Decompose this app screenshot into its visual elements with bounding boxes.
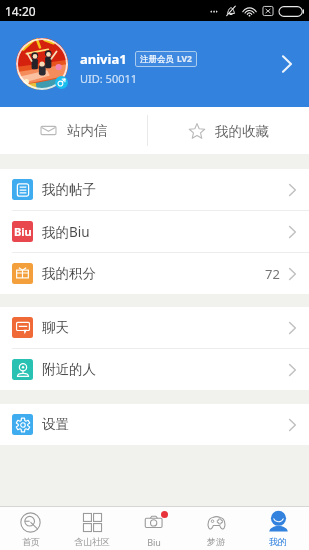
staticText: 含山社区 [74, 536, 110, 547]
staticText: UID: 50011 [80, 71, 138, 86]
button[interactable]: 设置 [0, 404, 309, 445]
button[interactable]: 聊天 [0, 307, 309, 348]
button[interactable]: 站内信 [0, 107, 147, 154]
staticText: 站内信 [67, 122, 108, 139]
staticText: LV2 [177, 53, 192, 65]
staticText: 14:20 [5, 3, 36, 19]
staticText: 聊天 [42, 319, 69, 336]
staticText: 我的积分 [42, 265, 96, 282]
staticText: Biu [147, 536, 161, 548]
staticText: 我的收藏 [215, 123, 269, 140]
button[interactable]: anivia1 [0, 21, 309, 107]
button[interactable]: 附近的人 [0, 349, 309, 390]
staticText: 注册会员 [140, 54, 174, 65]
staticText: 设置 [42, 416, 69, 433]
staticText: 首页 [22, 536, 40, 547]
button[interactable]: 我的 [247, 508, 309, 550]
button[interactable]: 我的收藏 [148, 107, 309, 154]
staticText: ··· [210, 4, 219, 18]
button[interactable]: Biu [0, 211, 309, 252]
staticText: 梦游 [207, 536, 225, 547]
staticText: 我的 [269, 536, 287, 547]
staticText: 我的Biu [42, 223, 90, 241]
staticText: 72 [265, 265, 280, 283]
staticText: Biu [14, 224, 32, 239]
staticText: anivia1 [80, 50, 127, 68]
staticText: 我的帖子 [42, 181, 96, 198]
button[interactable]: 首页 [0, 508, 61, 550]
staticText: 附近的人 [42, 361, 96, 378]
button[interactable]: 我的帖子 [0, 169, 309, 210]
button[interactable]: 含山社区 [61, 508, 123, 550]
button[interactable]: Biu [123, 508, 185, 550]
button[interactable]: 我的积分 [0, 253, 309, 294]
button[interactable]: 梦游 [185, 508, 247, 550]
